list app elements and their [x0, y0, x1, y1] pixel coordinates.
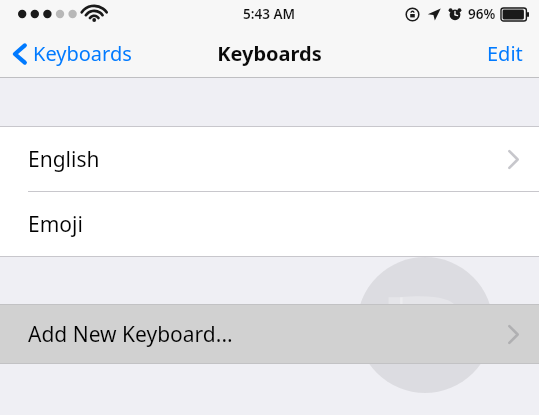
staticText: Edit	[487, 40, 523, 67]
button[interactable]: Emoji	[0, 192, 539, 256]
staticText: 96%	[468, 5, 496, 23]
staticText: Add New Keyboard...	[28, 320, 233, 349]
button[interactable]: Keyboards	[12, 40, 132, 67]
staticText: 5:43 AM	[243, 5, 296, 23]
button[interactable]: English	[0, 127, 539, 191]
staticText: Keyboards	[217, 40, 322, 67]
button[interactable]: Edit	[471, 30, 539, 77]
staticText: Emoji	[28, 210, 83, 239]
staticText: English	[28, 145, 100, 174]
staticText: Keyboards	[33, 40, 132, 67]
button[interactable]: Add New Keyboard...	[0, 305, 539, 363]
